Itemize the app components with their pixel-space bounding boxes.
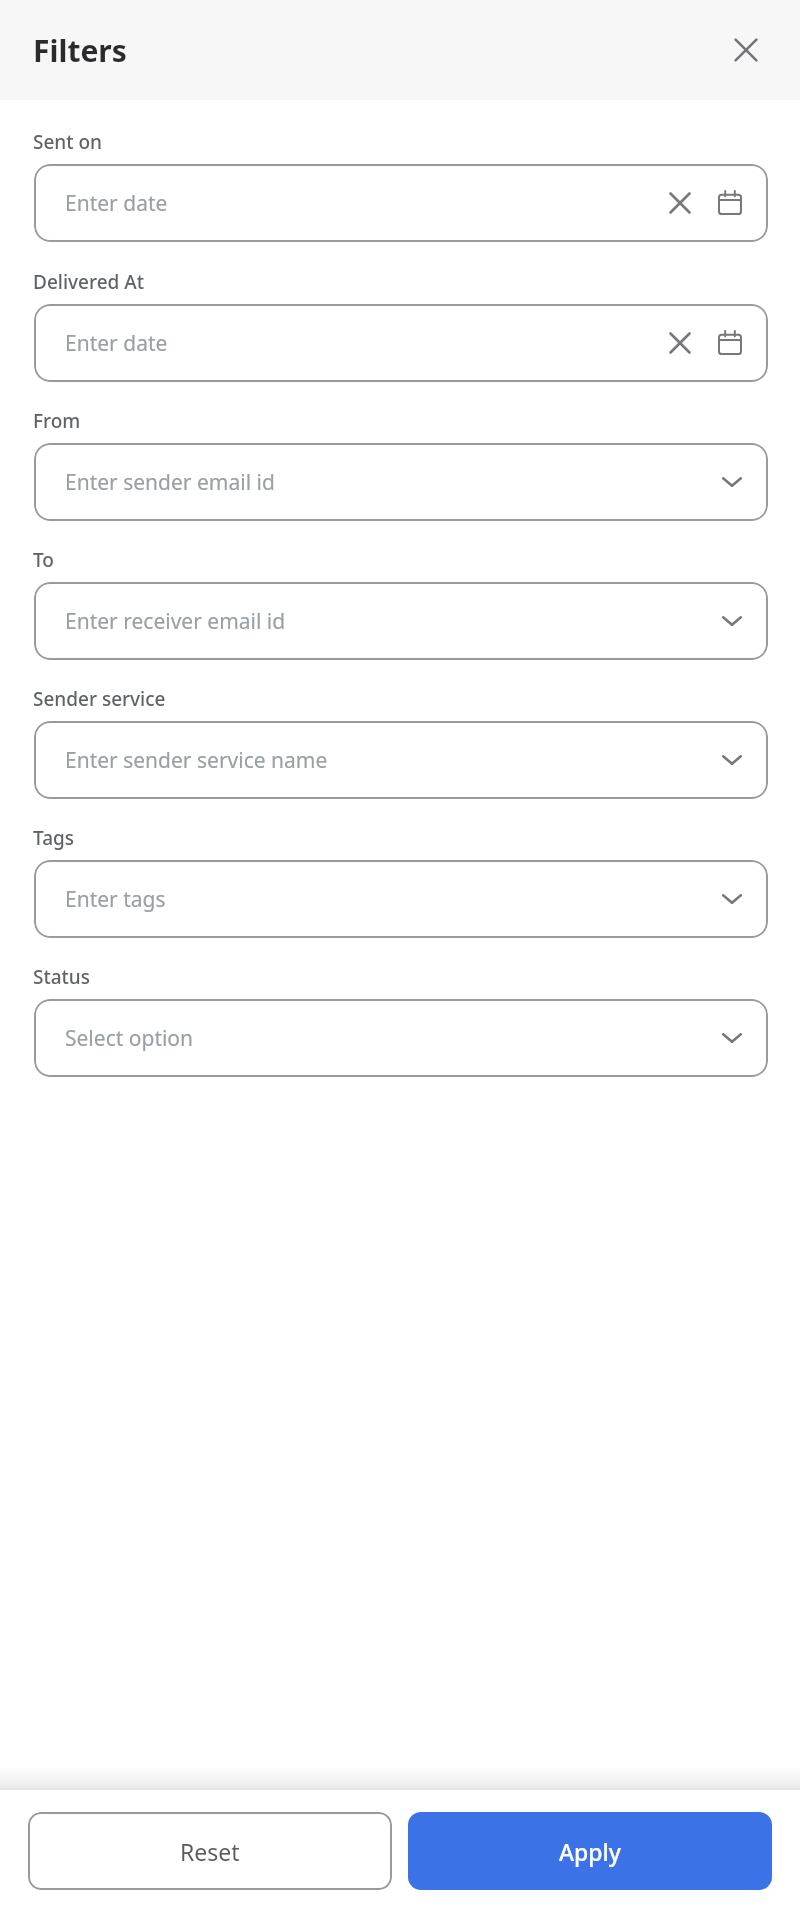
- staticText: Tags: [33, 825, 75, 851]
- staticText: Apply: [559, 1836, 621, 1867]
- button[interactable]: Enter date: [34, 164, 768, 242]
- button[interactable]: Close: [718, 22, 774, 78]
- staticText: Enter tags: [65, 885, 706, 914]
- staticText: Enter date: [65, 329, 658, 358]
- button[interactable]: Select option: [34, 999, 768, 1077]
- button[interactable]: Enter receiver email id: [34, 582, 768, 660]
- staticText: Select option: [65, 1024, 706, 1053]
- button[interactable]: Enter tags: [34, 860, 768, 938]
- staticText: Enter receiver email id: [65, 607, 706, 636]
- staticText: Enter sender service name: [65, 746, 706, 775]
- button[interactable]: Enter sender service name: [34, 721, 768, 799]
- button[interactable]: Clear date: [658, 321, 702, 365]
- button[interactable]: Apply: [408, 1812, 772, 1890]
- button[interactable]: Pick date: [706, 319, 754, 367]
- button[interactable]: Clear date: [658, 181, 702, 225]
- staticText: To: [33, 547, 54, 573]
- button[interactable]: Reset: [28, 1812, 392, 1890]
- button[interactable]: Enter sender email id: [34, 443, 768, 521]
- staticText: Sent on: [33, 129, 103, 155]
- staticText: From: [33, 408, 81, 434]
- button[interactable]: Pick date: [706, 179, 754, 227]
- button[interactable]: Enter date: [34, 304, 768, 382]
- staticText: Enter sender email id: [65, 468, 706, 497]
- staticText: Delivered At: [33, 269, 144, 295]
- staticText: Reset: [180, 1836, 240, 1867]
- staticText: Enter date: [65, 189, 658, 218]
- staticText: Filters: [33, 30, 127, 71]
- staticText: Sender service: [33, 686, 166, 712]
- staticText: Status: [33, 964, 91, 990]
